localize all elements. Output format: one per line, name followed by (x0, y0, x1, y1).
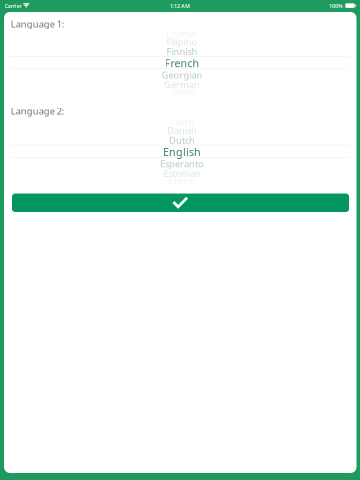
staticText: English (163, 145, 201, 159)
staticText: Czech (170, 117, 193, 128)
staticText: Dutch (169, 134, 195, 146)
staticText: 1:12 AM (170, 2, 190, 10)
staticText: Language 1: (11, 18, 65, 30)
staticText: Filipino (166, 36, 197, 48)
staticText: Finnish (166, 45, 197, 58)
staticText: Georgian (161, 69, 202, 81)
staticText: Greek (170, 87, 193, 97)
staticText: Language 2: (11, 105, 65, 117)
button[interactable] (12, 193, 349, 212)
staticText: Filipino (168, 175, 195, 186)
staticText: German (164, 78, 200, 90)
staticText: Estonian (166, 28, 198, 39)
staticText: Esperanto (160, 157, 204, 170)
staticText: Danish (167, 124, 197, 137)
staticText: 100% (329, 2, 343, 10)
staticText: Carrier (4, 2, 21, 10)
staticText: French (164, 56, 199, 70)
staticText: Estonian (163, 167, 200, 179)
